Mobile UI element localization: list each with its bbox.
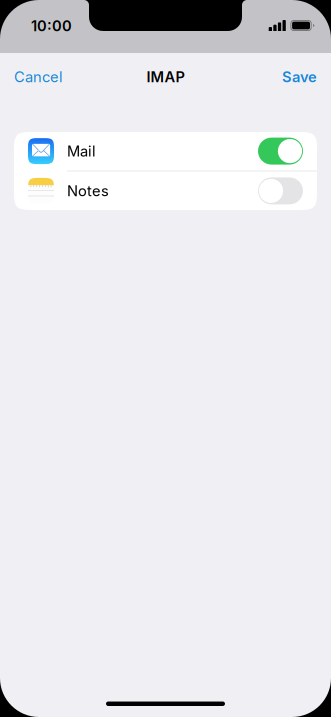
button[interactable]: Notes [14, 171, 317, 210]
button[interactable]: Mail [14, 132, 317, 171]
staticText: IMAP [146, 68, 184, 86]
button[interactable]: Cancel [14, 62, 74, 92]
staticText: 10:00 [31, 17, 72, 35]
staticText: Mail [67, 142, 96, 160]
button[interactable]: Save [257, 62, 317, 92]
staticText: Save [282, 68, 317, 86]
staticText: Notes [67, 182, 109, 200]
staticText: Cancel [14, 68, 63, 86]
